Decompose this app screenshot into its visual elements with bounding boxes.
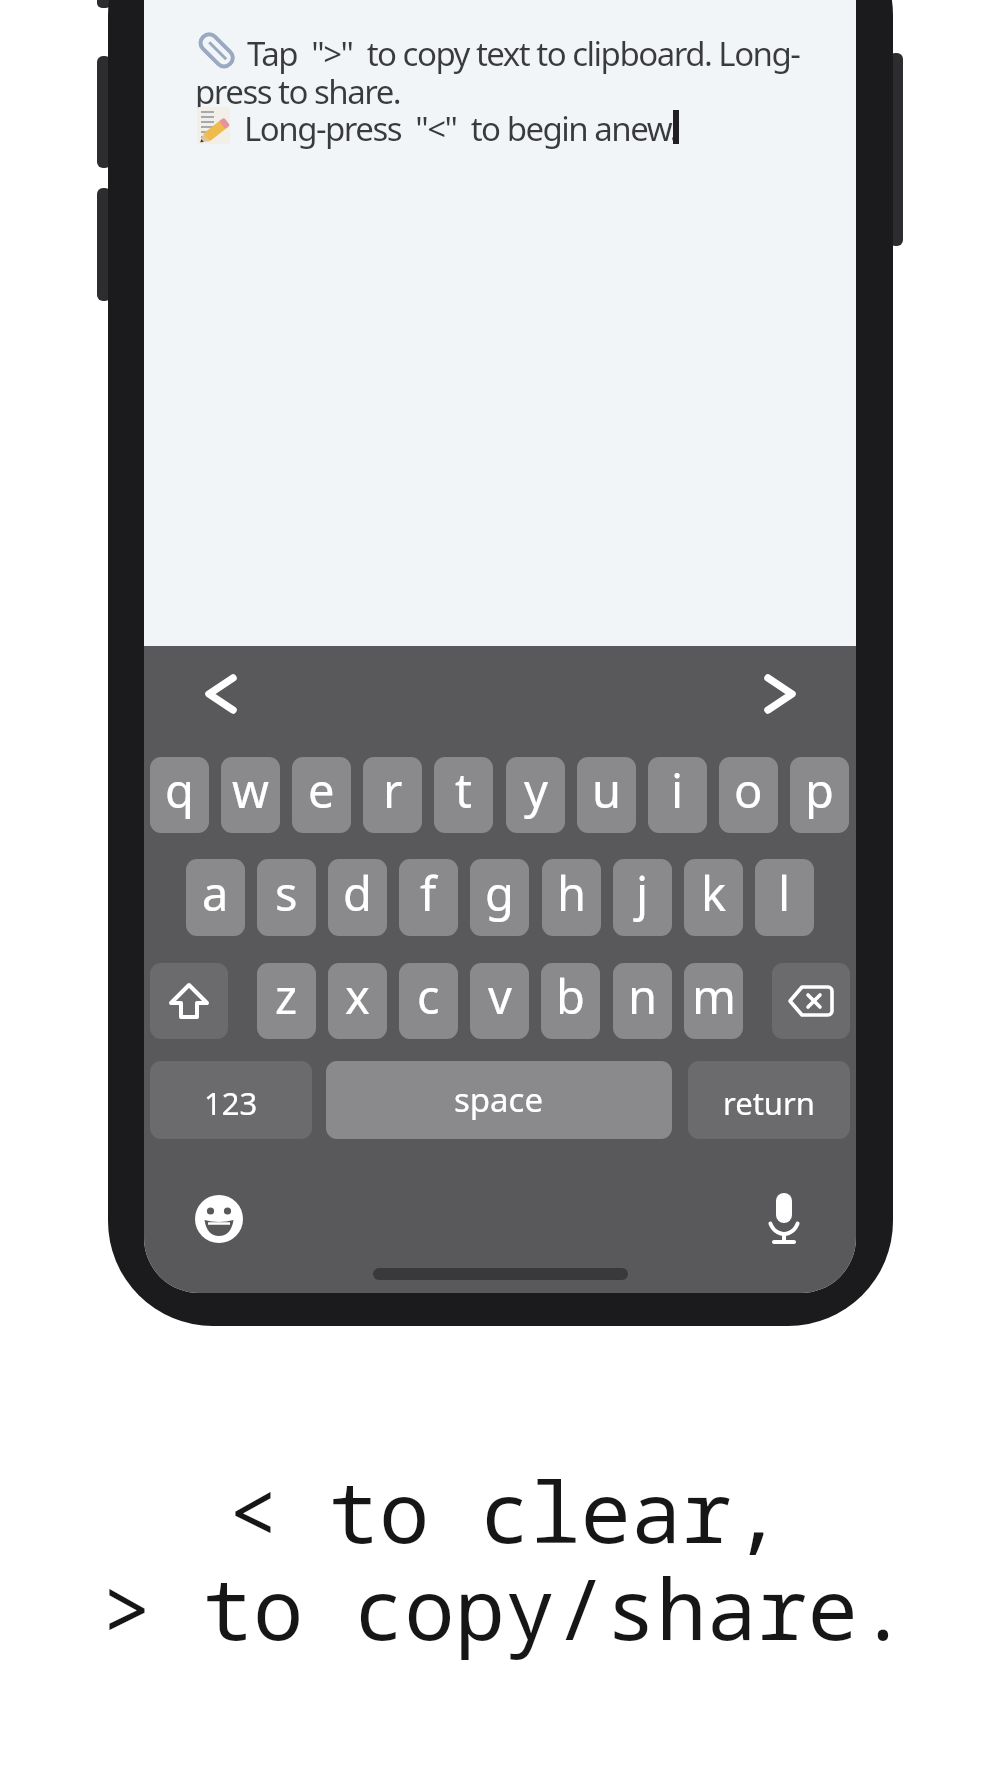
button[interactable]: 123 [150,1061,312,1139]
button[interactable]: n [613,963,672,1039]
staticText: Long-press "<" to begin anew. [244,106,678,151]
button[interactable]: x [328,963,387,1039]
staticText: x [345,964,370,1028]
staticText: space [454,1077,544,1122]
button[interactable]: z [257,963,316,1039]
button[interactable] [200,670,244,718]
button[interactable]: f [399,859,458,936]
button[interactable]: return [688,1061,850,1139]
button[interactable]: j [613,859,672,936]
button[interactable] [195,1195,243,1243]
button[interactable]: a [186,859,245,936]
button[interactable] [757,670,801,718]
staticText: b [556,964,585,1028]
staticText: return [723,1082,815,1124]
staticText: v [488,964,512,1028]
staticText: Tap ">" to copy text to clipboard. Long- [247,31,800,76]
button[interactable]: u [577,757,636,833]
staticText: g [485,861,514,925]
button[interactable]: q [150,757,209,833]
staticText: e [308,758,335,822]
button[interactable]: o [719,757,778,833]
staticText: r [383,758,403,822]
button[interactable] [762,1192,806,1246]
staticText: press to share. [195,69,401,114]
button[interactable]: m [684,963,743,1039]
staticText: l [778,861,791,925]
button[interactable]: w [221,757,280,833]
staticText: p [805,758,834,822]
staticText: t [455,758,472,822]
button[interactable]: h [542,859,601,936]
button[interactable]: c [399,963,458,1039]
button[interactable]: s [257,859,316,936]
button[interactable]: r [363,757,422,833]
staticText: u [592,758,622,822]
staticText: a [202,861,229,925]
staticText: w [232,758,269,822]
staticText: s [275,861,298,925]
staticText: y [524,758,548,822]
button[interactable] [150,963,228,1039]
staticText: < to clear, > to copy/share. [5,1453,1000,1665]
staticText: m [692,964,736,1028]
button[interactable]: v [470,963,529,1039]
button[interactable]: d [328,859,387,936]
button[interactable]: y [506,757,565,833]
button[interactable]: e [292,757,351,833]
button[interactable]: g [470,859,529,936]
button[interactable]: l [755,859,814,936]
staticText: z [275,964,298,1028]
button[interactable]: p [790,757,849,833]
staticText: n [628,964,658,1028]
staticText: f [420,861,437,925]
staticText: i [671,758,684,822]
button[interactable]: k [684,859,743,936]
staticText: j [636,861,649,925]
staticText: k [701,861,727,925]
staticText: q [165,758,194,822]
staticText: d [343,861,372,925]
button[interactable] [772,963,850,1039]
button[interactable]: space [326,1061,672,1139]
staticText: c [417,964,440,1028]
button[interactable]: i [648,757,707,833]
button[interactable]: t [434,757,493,833]
button[interactable]: b [541,963,600,1039]
staticText: o [734,758,763,822]
staticText: h [557,861,587,925]
staticText: 123 [204,1082,258,1124]
